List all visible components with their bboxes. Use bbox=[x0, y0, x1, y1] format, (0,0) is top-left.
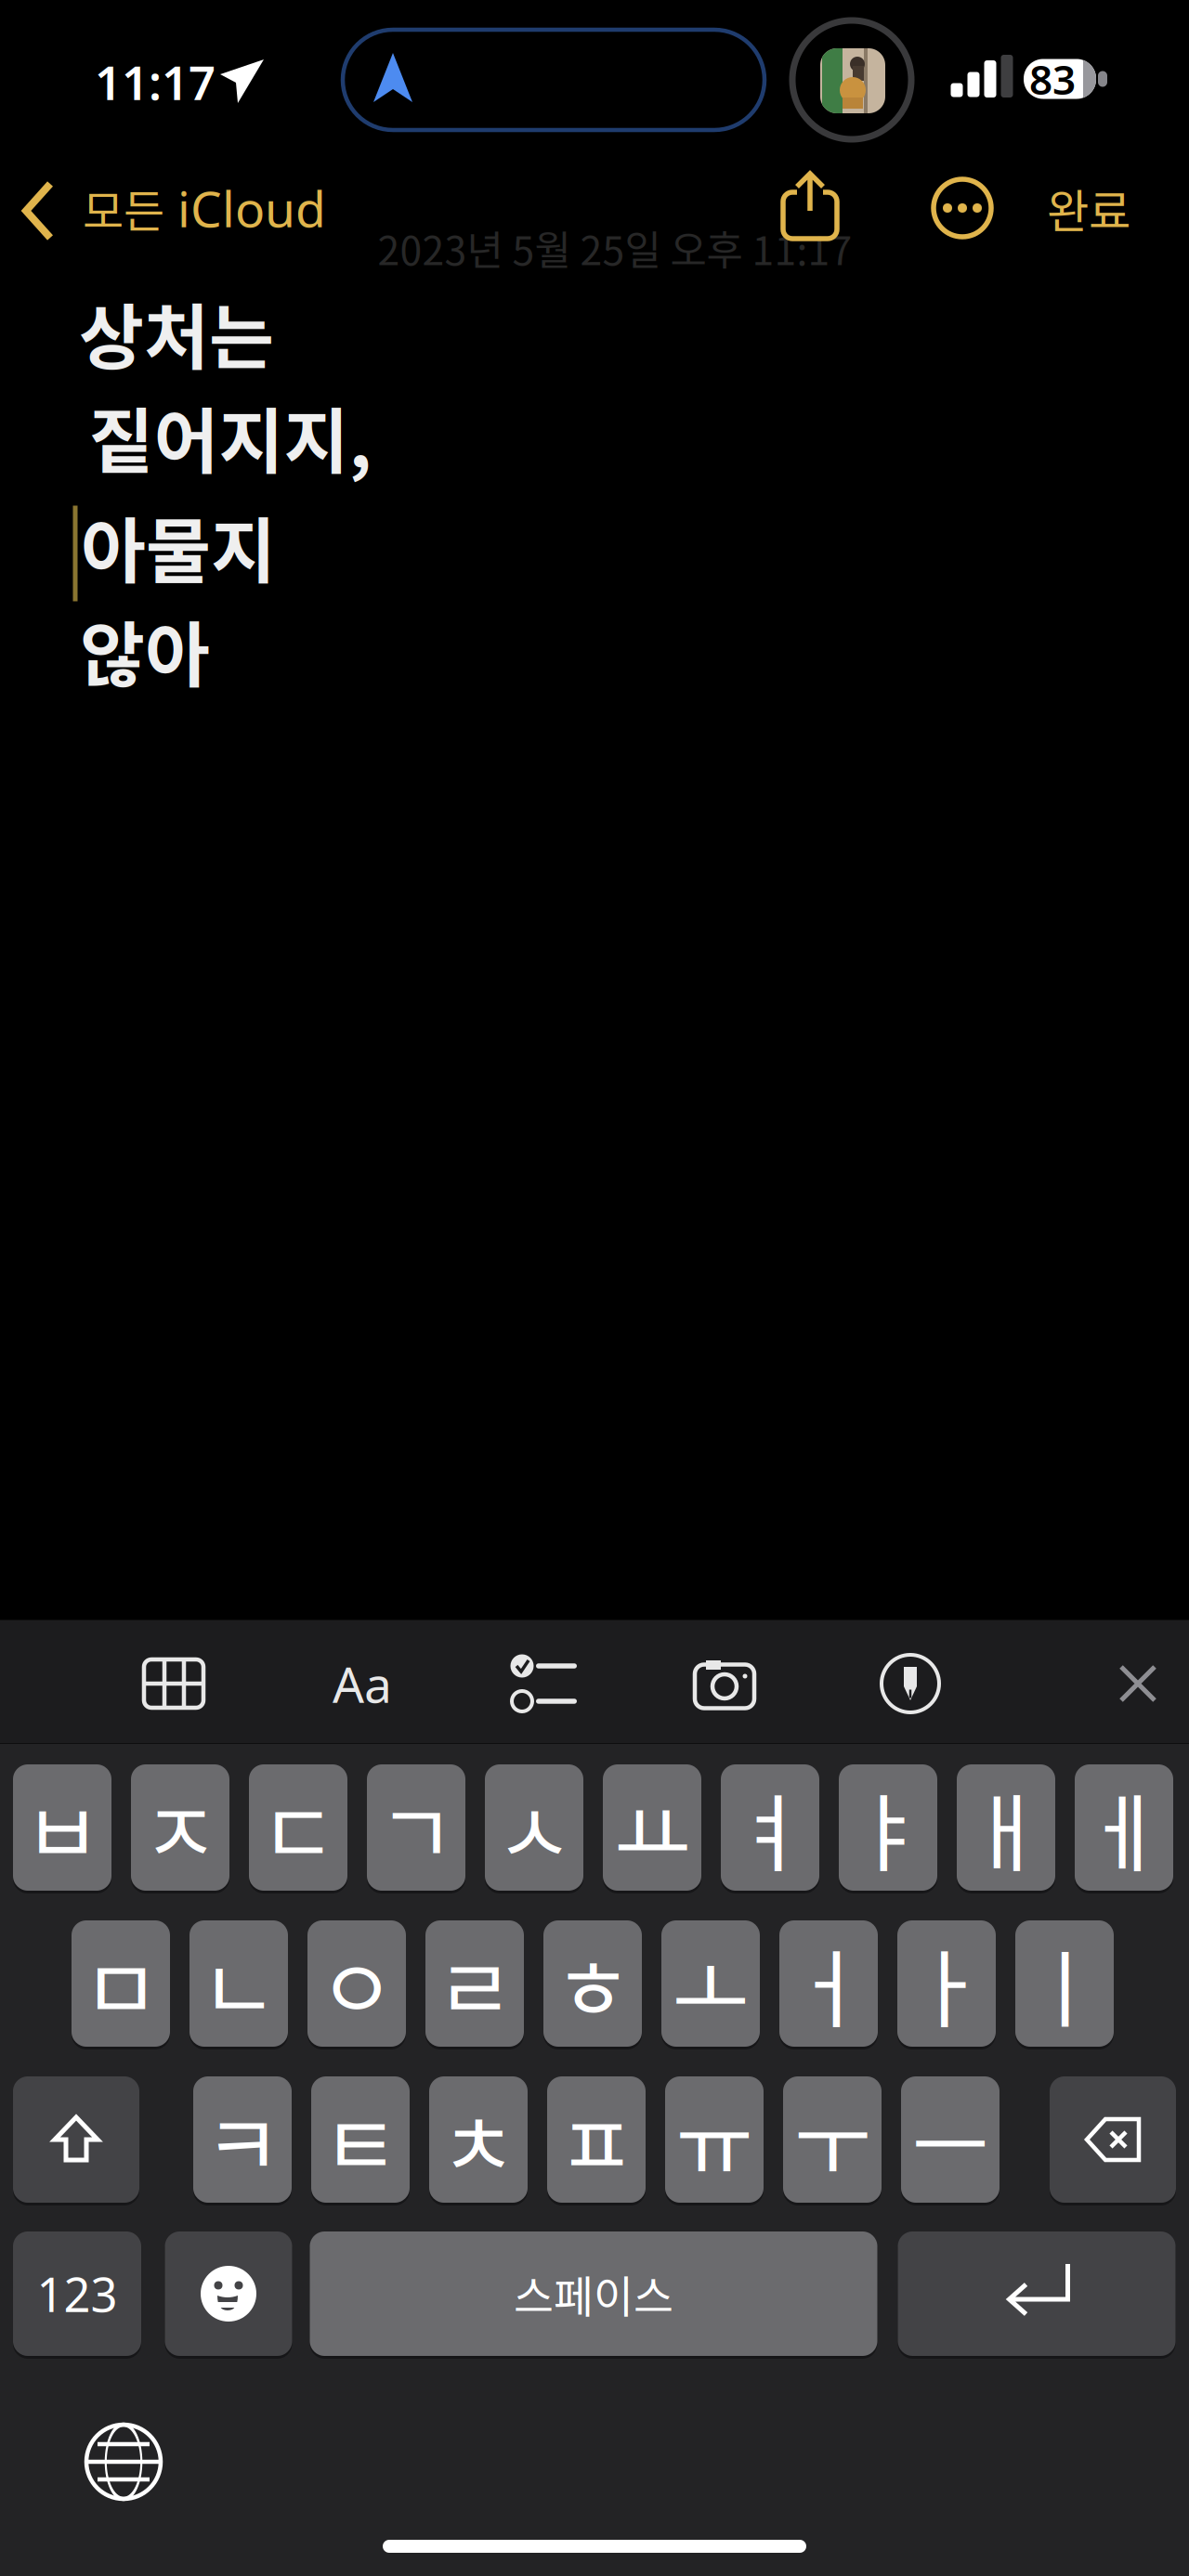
button[interactable]: ㅛ bbox=[603, 1763, 701, 1893]
staticText: ㄹ bbox=[436, 1923, 513, 2045]
button[interactable]: ㅜ bbox=[783, 2075, 882, 2205]
button[interactable]: Numbers bbox=[13, 2230, 141, 2358]
staticText: ㅊ bbox=[440, 2079, 517, 2201]
button[interactable]: ㅈ bbox=[131, 1763, 229, 1893]
staticText: ㅏ bbox=[908, 1923, 985, 2045]
staticText: iCloud bbox=[177, 175, 326, 241]
button[interactable]: Markup bbox=[877, 1654, 944, 1713]
button[interactable]: Delete bbox=[1050, 2075, 1176, 2205]
button[interactable]: ㅂ bbox=[13, 1763, 111, 1893]
button[interactable]: Format bbox=[320, 1654, 404, 1713]
button[interactable]: ㅋ bbox=[193, 2075, 292, 2205]
staticText: ㅁ bbox=[82, 1923, 159, 2045]
button[interactable]: Checklist bbox=[512, 1654, 579, 1713]
staticText: 83 bbox=[1029, 52, 1076, 106]
staticText: ㄷ bbox=[260, 1767, 337, 1889]
staticText: ㅠ bbox=[676, 2079, 753, 2201]
staticText: ㄴ bbox=[200, 1923, 277, 2045]
button[interactable]: ㅑ bbox=[839, 1763, 937, 1893]
staticText: 않아 bbox=[80, 599, 210, 701]
staticText: ㅇ bbox=[318, 1923, 395, 2045]
button[interactable]: ㅣ bbox=[1015, 1919, 1114, 2049]
button[interactable]: ㅎ bbox=[543, 1919, 642, 2049]
button[interactable]: ㅓ bbox=[779, 1919, 878, 2049]
button[interactable]: ㅐ bbox=[957, 1763, 1055, 1893]
staticText: ㅣ bbox=[1026, 1923, 1103, 2045]
button[interactable]: ㅇ bbox=[307, 1919, 406, 2049]
staticText: 모든 bbox=[83, 176, 164, 240]
button[interactable]: ㅡ bbox=[901, 2075, 1000, 2205]
button[interactable]: Share bbox=[777, 170, 843, 242]
button[interactable]: Dismiss keyboard bbox=[1108, 1654, 1168, 1713]
button[interactable]: ㄷ bbox=[249, 1763, 347, 1893]
button[interactable]: Insert table bbox=[140, 1654, 207, 1713]
button[interactable]: 모든 bbox=[0, 160, 316, 262]
staticText: ㅍ bbox=[558, 2079, 635, 2201]
button[interactable]: ㄹ bbox=[425, 1919, 524, 2049]
staticText: ㅡ bbox=[912, 2079, 989, 2201]
button[interactable]: ㅍ bbox=[547, 2075, 646, 2205]
staticText: ㅔ bbox=[1085, 1767, 1163, 1889]
staticText: 2023년 5월 25일 오후 11:17 bbox=[378, 219, 852, 277]
staticText: ㅐ bbox=[967, 1767, 1045, 1889]
button[interactable]: Return bbox=[898, 2230, 1176, 2358]
button[interactable]: ㅠ bbox=[665, 2075, 764, 2205]
button[interactable]: ㄱ bbox=[367, 1763, 465, 1893]
staticText: Aa bbox=[333, 1651, 392, 1716]
staticText: 11:17 bbox=[95, 51, 216, 113]
button[interactable]: ㅌ bbox=[311, 2075, 410, 2205]
staticText: 짙어지지, bbox=[89, 385, 372, 488]
staticText: ㅅ bbox=[496, 1767, 573, 1889]
staticText: 아물지 bbox=[81, 495, 276, 597]
staticText: 123 bbox=[37, 2262, 118, 2325]
staticText: ㅜ bbox=[794, 2079, 871, 2201]
staticText: ㅋ bbox=[204, 2079, 281, 2201]
button[interactable]: Next keyboard bbox=[83, 2421, 164, 2503]
button[interactable]: ㅕ bbox=[721, 1763, 819, 1893]
staticText: 상처는 bbox=[79, 281, 274, 384]
staticText: ㅕ bbox=[732, 1767, 809, 1889]
button[interactable]: 스페이스 bbox=[310, 2230, 877, 2358]
staticText: ㅎ bbox=[554, 1923, 631, 2045]
staticText: 완료 bbox=[1047, 175, 1130, 241]
staticText: ㅛ bbox=[614, 1767, 691, 1889]
button[interactable]: ㅏ bbox=[897, 1919, 996, 2049]
button[interactable]: 완료 bbox=[1028, 171, 1149, 245]
button[interactable]: ㅔ bbox=[1075, 1763, 1173, 1893]
button[interactable]: ㅊ bbox=[429, 2075, 528, 2205]
button[interactable]: Insert photo bbox=[691, 1654, 758, 1713]
staticText: ㅑ bbox=[849, 1767, 927, 1889]
staticText: ㅈ bbox=[142, 1767, 219, 1889]
staticText: ㅓ bbox=[790, 1923, 867, 2045]
staticText: ㅗ bbox=[672, 1923, 749, 2045]
button[interactable]: Emoji bbox=[165, 2230, 292, 2358]
button[interactable]: ㄴ bbox=[189, 1919, 288, 2049]
button[interactable]: More bbox=[930, 176, 995, 241]
button[interactable]: ㅁ bbox=[72, 1919, 170, 2049]
button[interactable]: ㅗ bbox=[661, 1919, 760, 2049]
staticText: ㅌ bbox=[322, 2079, 399, 2201]
button[interactable]: ㅅ bbox=[485, 1763, 583, 1893]
staticText: 스페이스 bbox=[514, 2262, 673, 2325]
staticText: ㅂ bbox=[24, 1767, 101, 1889]
button[interactable]: Shift bbox=[13, 2075, 139, 2205]
staticText: ㄱ bbox=[378, 1767, 455, 1889]
